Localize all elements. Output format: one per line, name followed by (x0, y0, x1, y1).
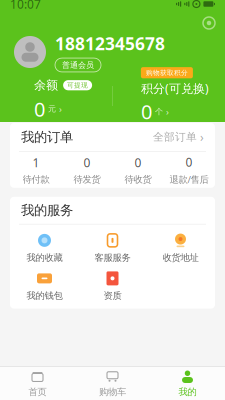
button[interactable]: 客服服务 (78, 229, 146, 267)
staticText: 0 (185, 154, 192, 170)
staticText: 收货地址 (162, 252, 198, 263)
staticText: 我的 (178, 386, 196, 398)
staticText: 0 (134, 155, 141, 170)
button[interactable]: 0 (61, 157, 112, 183)
button[interactable]: 普通会员 (55, 58, 101, 72)
staticText: 首页 (28, 386, 46, 398)
staticText: 客服服务 (94, 252, 130, 263)
staticText: 资质 (103, 290, 121, 301)
staticText: 全部订单 (153, 130, 197, 143)
button[interactable]: 我的钱包 (10, 267, 78, 305)
staticText: 10:07 (10, 0, 41, 12)
staticText: › (197, 129, 204, 145)
button[interactable]: 余额 (0, 72, 112, 120)
button[interactable]: 首页 (0, 367, 75, 400)
staticText: 积分(可兑换) (141, 80, 209, 96)
staticText: 购物获取积分 (146, 69, 188, 77)
button[interactable]: 资质 (78, 267, 146, 305)
staticText: 0 (83, 155, 90, 170)
staticText: 待发货 (73, 173, 100, 185)
button[interactable]: 0 (163, 157, 214, 183)
staticText: 我的钱包 (26, 290, 62, 301)
button[interactable]: 我的 (150, 367, 225, 400)
button[interactable]: 设置 (200, 14, 218, 32)
staticText: 可提现 (67, 81, 88, 89)
staticText: › (59, 103, 62, 115)
staticText: 余额 (34, 78, 58, 93)
staticText: 我的收藏 (26, 252, 62, 263)
staticText: 个 (155, 107, 163, 116)
staticText: 0 (34, 96, 45, 122)
button[interactable]: 我的订单 (10, 123, 215, 151)
staticText: 我的服务 (21, 202, 73, 218)
staticText: 待付款 (22, 173, 49, 185)
button[interactable]: 收货地址 (146, 229, 214, 267)
staticText: 普通会员 (62, 60, 94, 70)
button[interactable]: 头像 (14, 36, 46, 68)
staticText: 元 (48, 104, 56, 114)
staticText: 待收货 (124, 173, 151, 185)
button[interactable]: 0 (112, 157, 163, 183)
staticText: 退款/售后 (169, 173, 208, 185)
staticText: 1 (32, 155, 39, 170)
staticText: › (166, 105, 169, 118)
button[interactable]: 购物车 (75, 367, 150, 400)
button[interactable]: 购物获取积分 (113, 72, 225, 120)
button[interactable]: 1 (10, 157, 61, 183)
staticText: 我的订单 (21, 129, 73, 145)
staticText: 购物车 (99, 386, 126, 398)
button[interactable]: 我的收藏 (10, 229, 78, 267)
staticText: 0 (141, 98, 152, 125)
staticText: 18812345678 (55, 32, 165, 55)
